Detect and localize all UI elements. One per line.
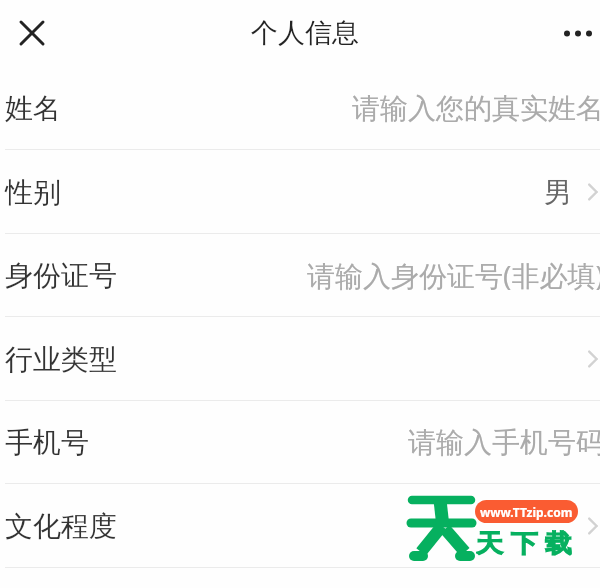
button[interactable]: Close <box>10 11 54 55</box>
staticText: 请输入身份证号(非必填) <box>307 256 600 294</box>
staticText: 姓名 <box>5 91 61 126</box>
staticText: 请输入手机号码 <box>408 425 600 460</box>
button[interactable]: 身份证号 <box>0 233 600 317</box>
staticText: 性别 <box>5 175 61 210</box>
button[interactable]: 文化程度 <box>0 484 600 568</box>
staticText: 文化程度 <box>5 509 117 544</box>
button[interactable]: 姓名 <box>0 66 600 150</box>
staticText: 手机号 <box>5 425 89 460</box>
staticText: 行业类型 <box>5 342 117 377</box>
button[interactable]: More options <box>556 11 600 55</box>
staticText: 个人信息 <box>251 16 359 50</box>
staticText: 请输入您的真实姓名 <box>352 91 600 126</box>
staticText: www.TTzip.com <box>480 504 573 520</box>
button[interactable]: 行业类型 <box>0 317 600 401</box>
button[interactable]: 性别 <box>0 150 600 234</box>
button[interactable]: 手机号 <box>0 400 600 484</box>
staticText: 身份证号 <box>5 258 117 293</box>
staticText: 天下载 <box>476 528 580 557</box>
staticText: 男 <box>544 175 572 210</box>
